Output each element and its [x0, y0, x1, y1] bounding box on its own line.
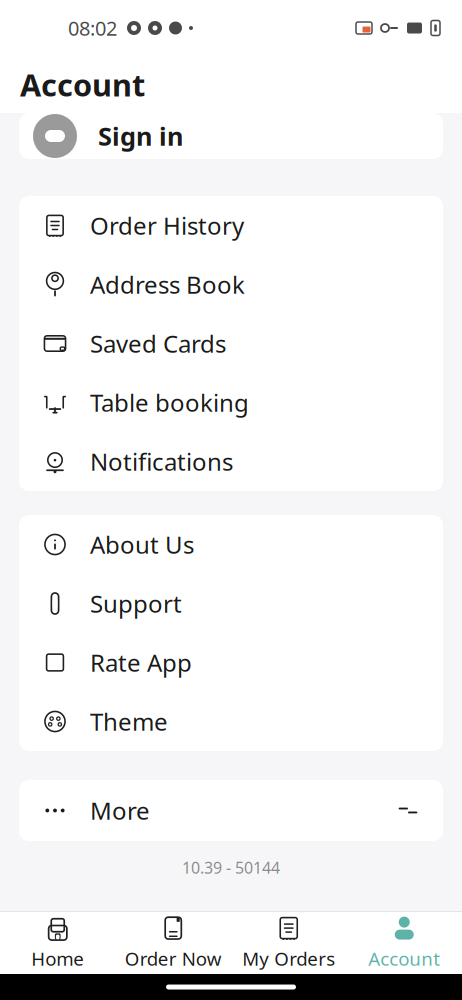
button[interactable]: Theme	[19, 692, 443, 751]
button[interactable]: My Orders	[231, 912, 346, 974]
button[interactable]: Home	[0, 912, 115, 974]
staticText: Order History	[90, 210, 244, 241]
staticText: 10.39 - 50144	[182, 857, 280, 878]
button[interactable]: Order History	[19, 196, 443, 255]
staticText: Saved Cards	[90, 328, 226, 359]
button[interactable]: Table booking	[19, 373, 443, 432]
button[interactable]: Sign in	[19, 113, 443, 159]
staticText: Order Now	[125, 946, 222, 971]
button[interactable]: Address Book	[19, 255, 443, 314]
staticText: 08:02	[68, 15, 117, 41]
staticText: Account	[20, 64, 145, 105]
button[interactable]: More	[19, 780, 443, 841]
staticText: About Us	[90, 529, 194, 560]
staticText: Theme	[90, 706, 168, 737]
staticText: Table booking	[90, 387, 249, 418]
button[interactable]: Account	[346, 912, 462, 974]
button[interactable]: Support	[19, 574, 443, 633]
staticText: Rate App	[90, 647, 192, 678]
button[interactable]: About Us	[19, 515, 443, 574]
staticText: Notifications	[90, 446, 233, 477]
staticText: Sign in	[98, 119, 183, 153]
staticText: Home	[31, 946, 84, 971]
button[interactable]: Rate App	[19, 633, 443, 692]
staticText: More	[90, 795, 150, 826]
staticText: My Orders	[242, 946, 335, 971]
button[interactable]: Notifications	[19, 432, 443, 491]
button[interactable]: Saved Cards	[19, 314, 443, 373]
staticText: Address Book	[90, 269, 245, 300]
staticText: Account	[368, 946, 440, 971]
button[interactable]: Order Now	[115, 912, 231, 974]
staticText: Support	[90, 588, 182, 619]
